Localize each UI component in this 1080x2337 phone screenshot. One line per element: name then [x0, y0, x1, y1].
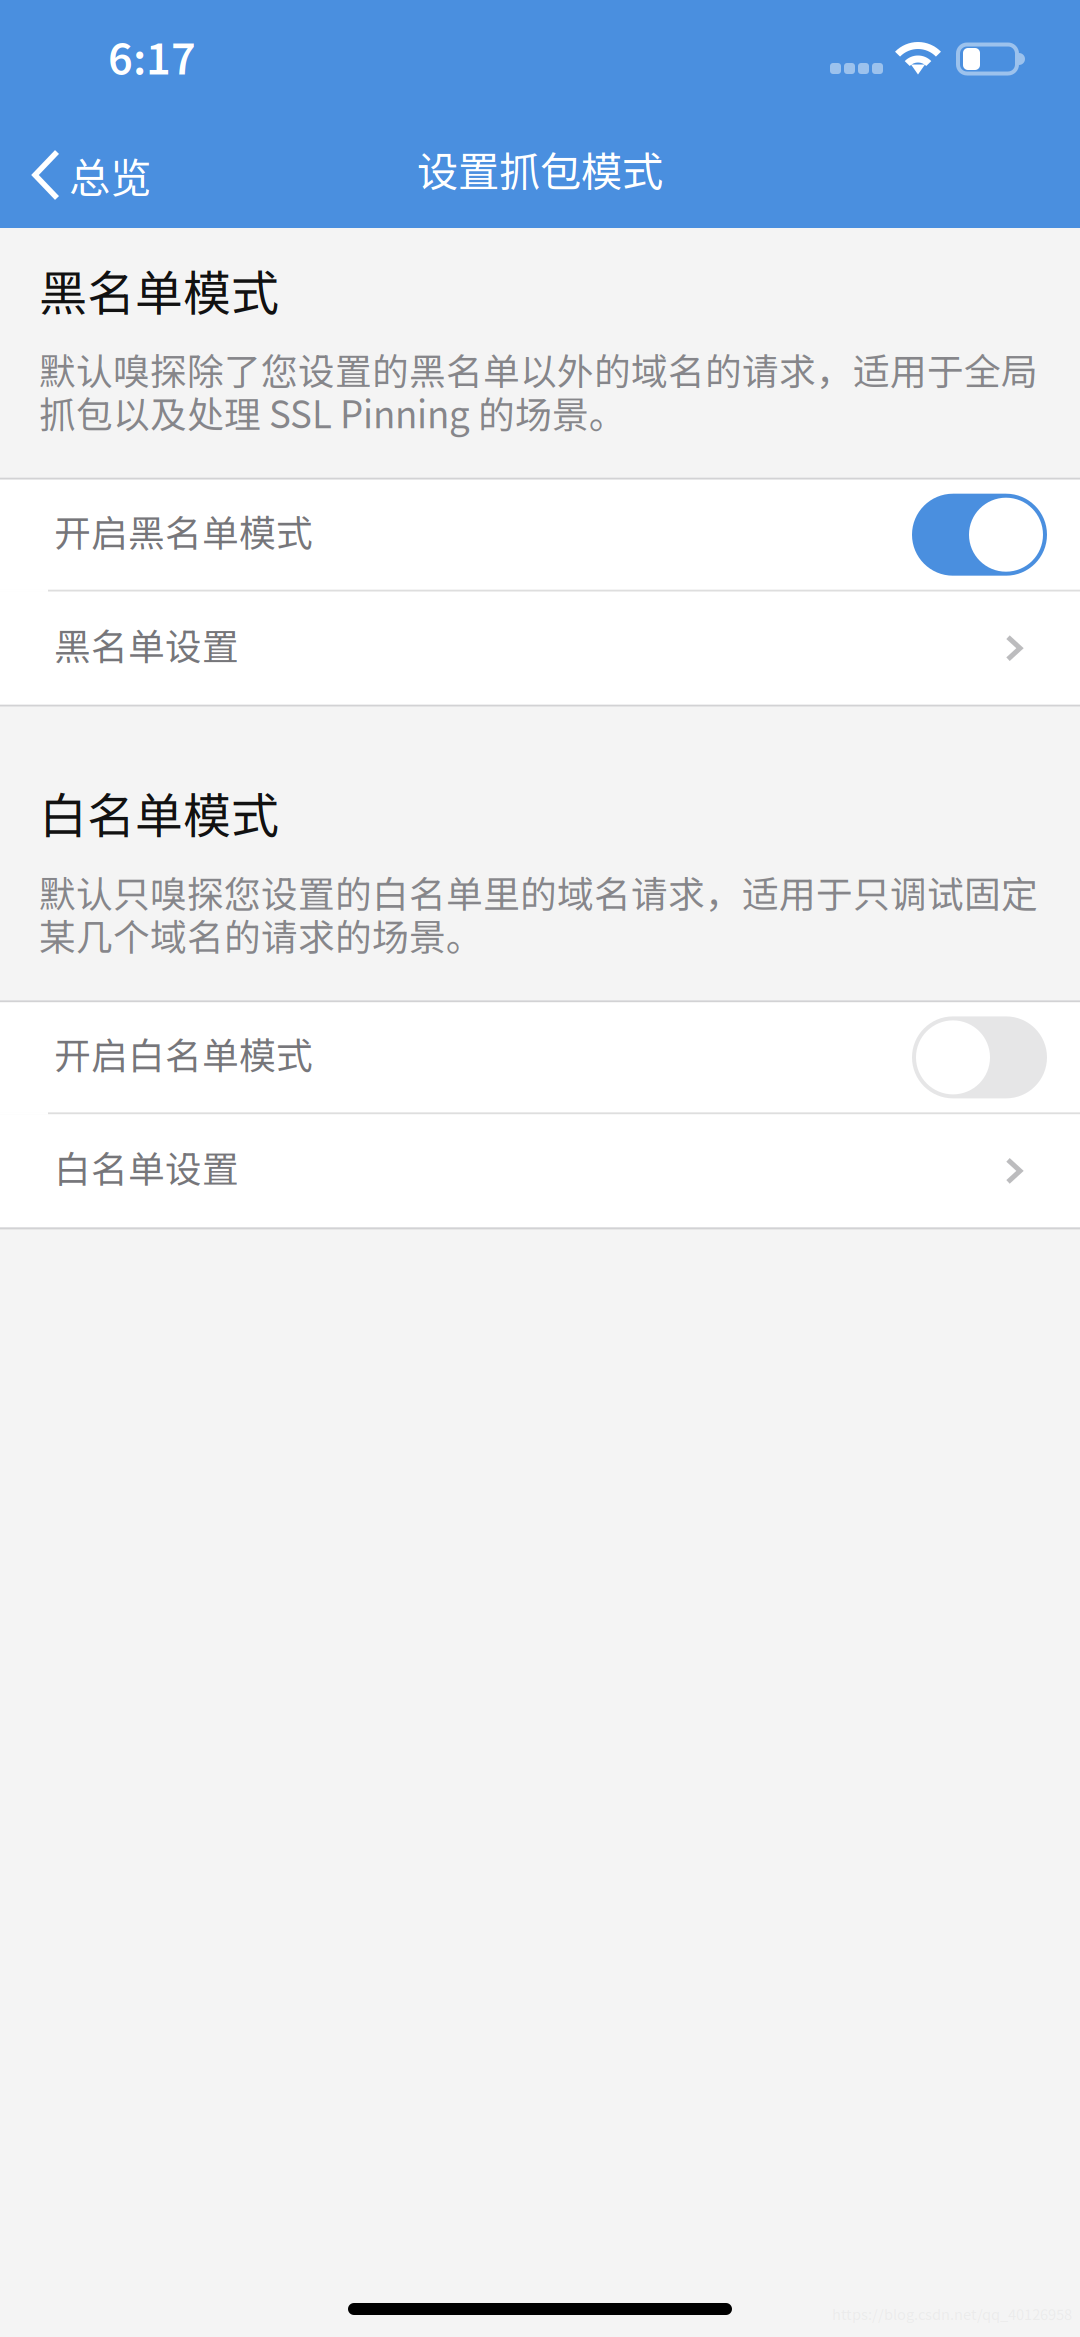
staticText: 总览	[69, 145, 151, 205]
staticText: 黑名单模式	[39, 255, 279, 324]
staticText: 默认嗅探除了您设置的黑名单以外的域名的请求，适用于全局 抓包以及处理 SSL P…	[39, 342, 1038, 439]
staticText: 黑名单设置	[54, 618, 239, 671]
staticText: 开启白名单模式	[54, 1027, 313, 1080]
button[interactable]: 白名单设置	[0, 1114, 1080, 1227]
staticText: 设置抓包模式	[417, 139, 663, 199]
staticText: 默认只嗅探您设置的白名单里的域名请求，适用于只调试固定 某几个域名的请求的场景。	[39, 865, 1038, 961]
staticText: 白名单模式	[39, 778, 279, 847]
button[interactable]: 开启白名单模式	[0, 1002, 1080, 1112]
staticText: 6:17	[108, 25, 196, 87]
button[interactable]: 返回 总览	[0, 129, 175, 221]
button[interactable]: 黑名单设置	[0, 592, 1080, 705]
button[interactable]: 开启黑名单模式	[0, 480, 1080, 590]
staticText: 白名单设置	[54, 1140, 239, 1193]
staticText: 开启黑名单模式	[54, 504, 313, 557]
